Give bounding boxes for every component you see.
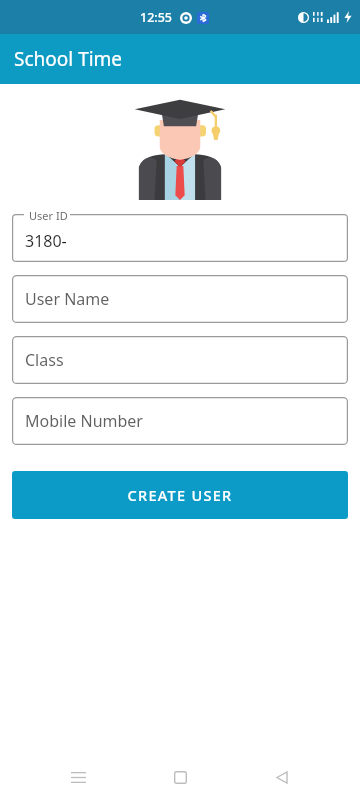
button[interactable]: Back (258, 754, 306, 800)
staticText: Mobile Number (25, 410, 143, 432)
staticText: User ID (29, 208, 68, 223)
staticText: 3180- (25, 230, 67, 252)
staticText: School Time (14, 46, 123, 72)
button[interactable]: User Name (12, 275, 348, 323)
staticText: 12:55 (140, 9, 173, 26)
button[interactable]: Class (12, 336, 348, 384)
staticText: CREATE USER (127, 485, 233, 505)
button[interactable]: User ID (12, 214, 348, 262)
button[interactable]: CREATE USER (12, 471, 348, 519)
staticText: Class (25, 349, 64, 371)
staticText: User Name (25, 288, 110, 310)
button[interactable]: Home (156, 754, 204, 800)
button[interactable]: Recent apps (54, 754, 102, 800)
button[interactable]: Mobile Number (12, 397, 348, 445)
